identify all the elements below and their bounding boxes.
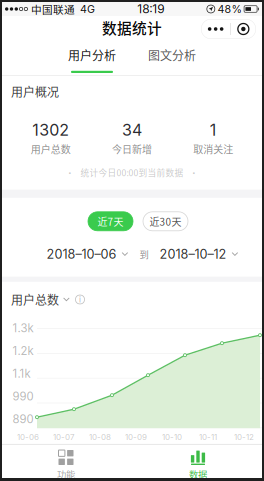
staticText: · 统计今日00:00到当前数据 · [65,166,198,179]
staticText: 近7天 [97,214,123,229]
staticText: 近30天 [149,214,181,229]
staticText: 10-06 [17,432,39,442]
staticText: 10-07 [53,432,75,442]
button[interactable]: Close mini program [231,19,256,39]
staticText: 10-11 [199,432,217,442]
button[interactable]: 2018–10–12 [159,246,238,262]
staticText: 用户总数 [31,141,71,156]
staticText: 18:19 [137,2,164,16]
staticText: 890 [12,412,33,426]
staticText: 34 [122,120,142,140]
staticText: 用户分析 [68,46,116,64]
staticText: 用户总数 [11,291,59,308]
staticText: 48% [218,2,242,15]
staticText: 用户概况 [11,83,59,100]
staticText: 到 [139,247,148,261]
button[interactable]: 数据 [132,445,264,478]
button[interactable]: 近30天 [143,212,188,231]
staticText: 取消关注 [193,141,233,156]
button[interactable]: 近7天 [88,212,133,231]
button[interactable]: 2018–10–06 [46,246,128,262]
staticText: 4G [80,2,95,15]
staticText: 2018–10–06 [46,246,116,262]
button[interactable]: More options [201,19,230,39]
staticText: 1.2k [12,344,33,358]
staticText: 数据 [189,467,207,481]
button[interactable]: 用户总数 [11,291,70,308]
staticText: 10-09 [125,432,147,442]
staticText: 功能 [57,467,75,481]
staticText: 2018–10–12 [159,246,226,262]
button[interactable]: 用户分析 [53,42,131,75]
button[interactable]: 功能 [0,445,132,478]
staticText: 今日新增 [112,141,152,156]
staticText: 1302 [32,120,69,140]
staticText: 10-12 [234,432,254,442]
staticText: 990 [12,390,33,403]
staticText: 10-08 [89,432,111,442]
staticText: 中国联通 [31,1,75,17]
button[interactable]: 图文分析 [133,42,211,75]
staticText: i [79,295,81,304]
staticText: 1 [210,120,217,140]
staticText: 10-10 [162,432,182,442]
staticText: 1.3k [12,321,33,335]
staticText: 数据统计 [102,17,162,38]
staticText: 1.1k [12,367,30,380]
staticText: 图文分析 [148,46,196,64]
